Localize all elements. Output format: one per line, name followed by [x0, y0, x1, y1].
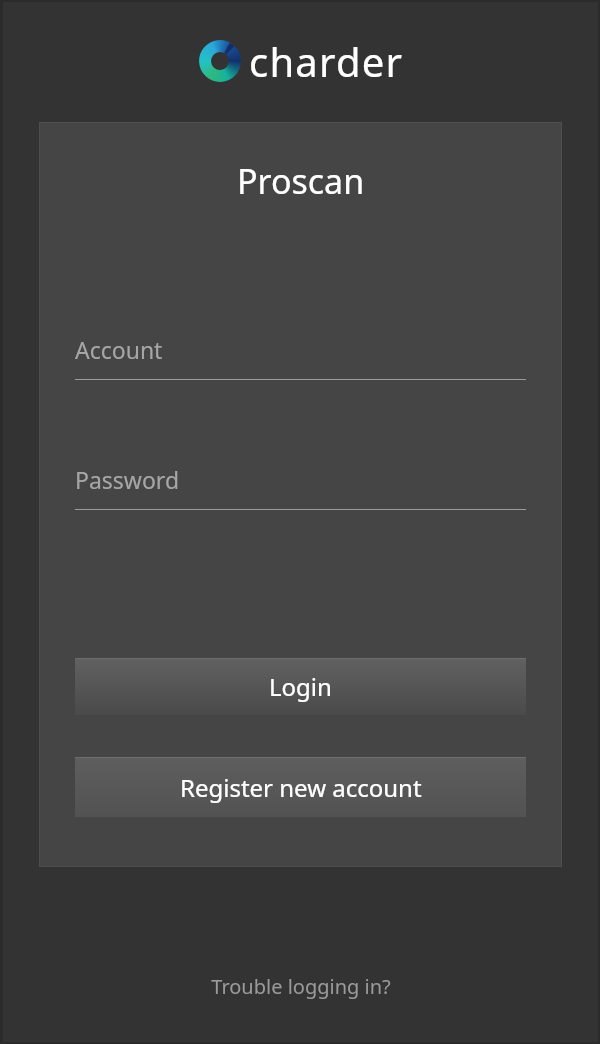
button[interactable]: Account: [75, 332, 526, 380]
button[interactable]: Login: [75, 658, 526, 715]
staticText: Login: [269, 670, 332, 703]
staticText: charder: [249, 34, 404, 88]
staticText: Proscan: [237, 158, 365, 204]
button[interactable]: Password: [75, 462, 526, 510]
staticText: Account: [75, 334, 163, 365]
staticText: Trouble logging in?: [211, 973, 391, 1000]
button[interactable]: Register new account: [75, 757, 526, 817]
staticText: Register new account: [180, 771, 422, 804]
button[interactable]: Trouble logging in?: [187, 963, 415, 1010]
staticText: Password: [75, 464, 180, 495]
